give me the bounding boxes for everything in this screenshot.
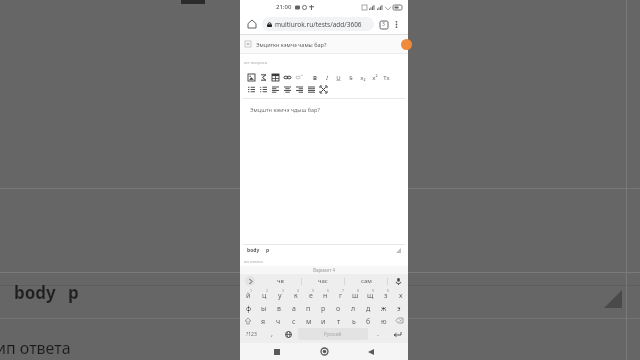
staticText: б <box>366 317 371 327</box>
button[interactable]: Tx <box>381 72 392 83</box>
button[interactable]: multiurok.ru/tests/add/3606 <box>262 17 374 31</box>
button[interactable]: Эмцштн кэмчэ чдыш бар? <box>243 99 405 244</box>
button[interactable]: ф <box>242 301 256 314</box>
button[interactable]: ы <box>256 301 271 314</box>
button[interactable]: Back <box>361 343 381 360</box>
button[interactable] <box>294 84 305 95</box>
button[interactable] <box>294 72 305 83</box>
staticText: . <box>377 329 379 339</box>
staticText: п <box>306 304 311 314</box>
button[interactable]: 3 <box>272 288 288 301</box>
button[interactable]: 5 <box>303 288 318 301</box>
button[interactable]: Change language <box>280 327 297 341</box>
button[interactable]: ь <box>346 314 361 327</box>
button[interactable] <box>258 84 269 95</box>
button[interactable]: э <box>391 301 406 314</box>
button[interactable]: р <box>316 301 331 314</box>
staticText: ж <box>381 304 387 314</box>
staticText: Эмцштн кэмчэ чдыш бар? <box>250 106 320 113</box>
button[interactable]: чв <box>260 274 301 288</box>
staticText: , <box>271 329 273 339</box>
button[interactable]: час <box>302 274 344 288</box>
button[interactable]: Tabs <box>377 18 390 31</box>
staticText: 0 <box>387 288 390 293</box>
button[interactable]: л <box>346 301 361 314</box>
button[interactable]: Home <box>245 17 259 31</box>
staticText: B <box>313 74 317 82</box>
button[interactable]: Русский <box>298 328 368 340</box>
staticText: я <box>261 317 266 327</box>
button[interactable]: п <box>301 301 316 314</box>
button[interactable]: 9 <box>363 288 378 301</box>
button[interactable] <box>258 72 269 83</box>
button[interactable]: 4 <box>288 288 303 301</box>
button[interactable]: x₂ <box>357 72 368 83</box>
staticText: 2 <box>266 288 269 293</box>
button[interactable]: о <box>331 301 346 314</box>
staticText: x² <box>372 74 378 82</box>
button[interactable]: м <box>301 314 316 327</box>
button[interactable] <box>318 84 329 95</box>
staticText: ц <box>262 291 267 301</box>
button[interactable]: б <box>361 314 376 327</box>
button[interactable] <box>282 72 293 83</box>
button[interactable]: I <box>321 72 332 83</box>
button[interactable]: Add <box>401 39 412 50</box>
button[interactable] <box>270 84 281 95</box>
button[interactable] <box>270 72 281 83</box>
button[interactable]: ?123 <box>240 327 263 341</box>
button[interactable]: Voice input <box>388 274 408 288</box>
button[interactable]: Эмциткн кэмчэ чамы бар? <box>240 35 408 53</box>
button[interactable]: 8 <box>348 288 363 301</box>
button[interactable]: Emoji <box>263 327 280 341</box>
staticText: ы <box>261 304 267 314</box>
button[interactable]: . <box>369 327 386 341</box>
button[interactable]: More options <box>390 18 403 31</box>
button[interactable]: ю <box>376 314 391 327</box>
button[interactable]: S <box>345 72 356 83</box>
button[interactable]: Recents <box>267 343 287 360</box>
button[interactable]: U <box>333 72 344 83</box>
button[interactable]: Home <box>314 343 334 360</box>
button[interactable]: 6 <box>318 288 333 301</box>
staticText: ь <box>352 317 356 327</box>
staticText: 8 <box>357 288 360 293</box>
button[interactable]: с <box>286 314 301 327</box>
button[interactable]: д <box>361 301 376 314</box>
staticText: и <box>321 317 326 327</box>
staticText: чв <box>277 277 284 285</box>
button[interactable]: а <box>286 301 301 314</box>
button[interactable] <box>246 72 257 83</box>
staticText: Русский <box>324 331 342 337</box>
button[interactable]: ч <box>271 314 286 327</box>
button[interactable]: и <box>316 314 331 327</box>
staticText: в <box>277 304 281 314</box>
button[interactable]: Shift <box>241 315 255 326</box>
button[interactable] <box>306 84 317 95</box>
button[interactable]: сам <box>345 274 387 288</box>
button[interactable]: x² <box>369 72 380 83</box>
button[interactable]: Enter <box>386 327 408 341</box>
staticText: body <box>247 247 260 254</box>
button[interactable]: х <box>393 288 408 301</box>
staticText: ?123 <box>246 331 257 338</box>
staticText: 4 <box>297 288 300 293</box>
button[interactable]: я <box>256 314 271 327</box>
button[interactable]: 2 <box>256 288 272 301</box>
button[interactable]: Backspace <box>392 315 407 326</box>
staticText: н <box>323 291 328 301</box>
staticText: й <box>246 291 251 301</box>
button[interactable]: B <box>309 72 320 83</box>
button[interactable]: 0 <box>378 288 393 301</box>
button[interactable]: ж <box>376 301 391 314</box>
staticText: p <box>68 281 79 304</box>
button[interactable]: Expand toolbar <box>240 274 260 288</box>
staticText: 3 <box>382 21 385 28</box>
staticText: г <box>339 291 343 301</box>
button[interactable]: т <box>331 314 346 327</box>
button[interactable]: 7 <box>333 288 348 301</box>
button[interactable]: в <box>271 301 286 314</box>
button[interactable] <box>282 84 293 95</box>
button[interactable] <box>246 84 257 95</box>
button[interactable]: 1 <box>240 288 256 301</box>
